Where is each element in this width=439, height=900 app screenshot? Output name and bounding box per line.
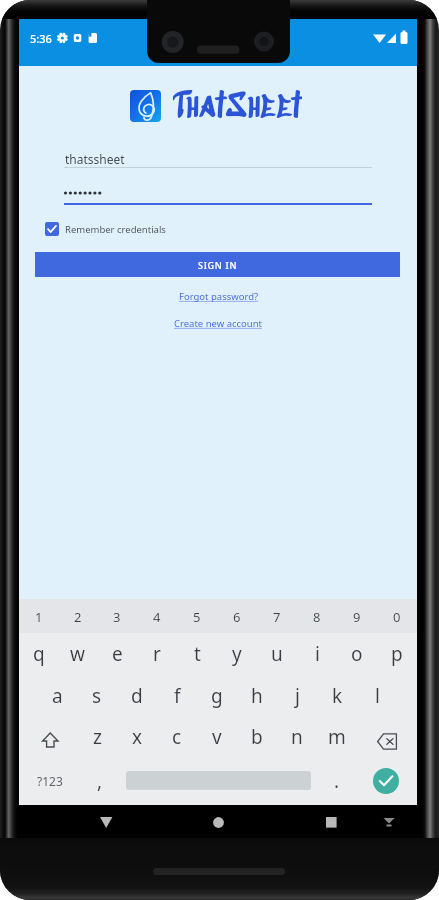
staticText: SIGN IN [198, 259, 238, 271]
staticText: thatssheet [65, 151, 125, 167]
button[interactable]: 1 [19, 599, 58, 633]
button[interactable]: t [177, 633, 217, 672]
button[interactable]: 4 [137, 599, 177, 633]
button[interactable]: f [157, 672, 197, 714]
staticText: e [112, 641, 123, 667]
button[interactable]: Backspace [357, 714, 417, 756]
staticText: d [131, 683, 143, 709]
button[interactable]: h [237, 672, 277, 714]
staticText: c [172, 724, 182, 750]
button[interactable]: Recent apps [311, 805, 351, 838]
staticText: 0 [393, 608, 401, 626]
staticText: 8 [313, 608, 321, 626]
staticText: Remember credentials [65, 223, 166, 236]
button[interactable]: v [197, 714, 237, 756]
button[interactable]: l [357, 672, 397, 714]
staticText: x [132, 724, 143, 750]
staticText: r [153, 641, 161, 667]
button[interactable]: z [78, 714, 117, 756]
staticText: Forgot password? [179, 290, 259, 303]
button[interactable]: 5 [177, 599, 217, 633]
staticText: 1 [35, 608, 43, 626]
staticText: s [92, 683, 102, 709]
staticText: 5 [193, 608, 201, 626]
staticText: l [375, 683, 380, 709]
staticText: Create new account [174, 317, 263, 330]
staticText: 5:36 [30, 31, 52, 46]
button[interactable]: Back [86, 805, 126, 838]
staticText: n [291, 724, 303, 750]
staticText: y [232, 641, 242, 667]
button[interactable]: o [337, 633, 377, 672]
button[interactable]: Home [198, 805, 238, 838]
staticText: g [211, 683, 223, 709]
staticText: 9 [353, 608, 361, 626]
staticText: w [70, 641, 85, 667]
staticText: 6 [233, 608, 241, 626]
staticText: 2 [74, 608, 82, 626]
staticText: 7 [273, 608, 281, 626]
button[interactable]: Hide keyboard [369, 805, 408, 838]
staticText: k [332, 683, 343, 709]
staticText: q [33, 641, 45, 667]
button[interactable]: Shift [19, 714, 78, 756]
button[interactable]: , [81, 756, 118, 805]
staticText: 4 [153, 608, 161, 626]
button[interactable]: Enter [355, 756, 417, 805]
staticText: . [334, 768, 340, 794]
button[interactable]: s [77, 672, 117, 714]
button[interactable]: m [317, 714, 357, 756]
staticText: i [315, 641, 320, 667]
button[interactable]: q [19, 633, 58, 672]
button[interactable]: SIGN IN [35, 252, 400, 277]
button[interactable]: b [237, 714, 277, 756]
button[interactable]: a [38, 672, 77, 714]
button[interactable]: w [58, 633, 97, 672]
button[interactable]: ?123 [19, 756, 81, 805]
button[interactable]: 0 [377, 599, 417, 633]
button[interactable]: Space [118, 756, 319, 805]
staticText: b [251, 724, 263, 750]
button[interactable]: p [377, 633, 417, 672]
button[interactable]: u [257, 633, 297, 672]
staticText: 3 [113, 608, 121, 626]
button[interactable]: k [317, 672, 357, 714]
button[interactable]: j [277, 672, 317, 714]
button[interactable]: i [297, 633, 337, 672]
staticText: u [271, 641, 283, 667]
button[interactable]: x [117, 714, 157, 756]
staticText: ?123 [37, 773, 63, 789]
staticText: z [93, 724, 102, 750]
staticText: h [251, 683, 263, 709]
button[interactable]: 3 [97, 599, 137, 633]
button[interactable]: e [97, 633, 137, 672]
staticText: a [52, 683, 63, 709]
staticText: ThatSheet [173, 86, 302, 120]
staticText: j [295, 683, 300, 709]
button[interactable]: Remember credentials [41, 217, 170, 241]
button[interactable]: 9 [337, 599, 377, 633]
staticText: m [328, 724, 346, 750]
staticText: v [212, 724, 222, 750]
button[interactable]: 8 [297, 599, 337, 633]
button[interactable]: d [117, 672, 157, 714]
button[interactable]: g [197, 672, 237, 714]
button[interactable]: Create new account [170, 314, 267, 333]
staticText: f [174, 683, 181, 709]
button[interactable]: y [217, 633, 257, 672]
button[interactable]: c [157, 714, 197, 756]
staticText: p [391, 641, 403, 667]
staticText: o [351, 641, 363, 667]
button[interactable]: 7 [257, 599, 297, 633]
button[interactable]: n [277, 714, 317, 756]
button[interactable]: 2 [58, 599, 97, 633]
button[interactable]: r [137, 633, 177, 672]
button[interactable]: . [319, 756, 355, 805]
button[interactable]: 6 [217, 599, 257, 633]
staticText: , [97, 768, 103, 794]
staticText: t [194, 641, 201, 667]
button[interactable]: Forgot password? [175, 287, 263, 306]
